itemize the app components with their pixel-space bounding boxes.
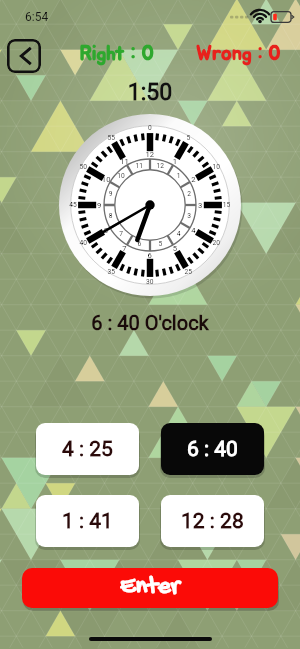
staticText: 4 : 25 bbox=[62, 437, 113, 462]
staticText: 1 : 41 bbox=[62, 509, 113, 534]
button[interactable]: 4 : 25 bbox=[36, 423, 139, 475]
staticText: Enter bbox=[120, 573, 180, 602]
staticText: Wrong : 0 bbox=[196, 44, 281, 64]
staticText: 1:50 bbox=[0, 79, 300, 106]
button[interactable]: 1 : 41 bbox=[36, 495, 139, 547]
button[interactable]: 6 : 40 bbox=[161, 423, 264, 475]
staticText: 6 : 40 O'clock bbox=[0, 311, 300, 334]
button[interactable]: 12 : 28 bbox=[161, 495, 264, 547]
staticText: 6:54 bbox=[25, 10, 49, 24]
button[interactable]: Enter bbox=[22, 568, 278, 608]
staticText: 6 : 40 bbox=[187, 437, 238, 462]
staticText: Right : 0 bbox=[80, 44, 154, 64]
staticText: 12 : 28 bbox=[181, 509, 244, 534]
button[interactable]: Back bbox=[7, 39, 41, 73]
